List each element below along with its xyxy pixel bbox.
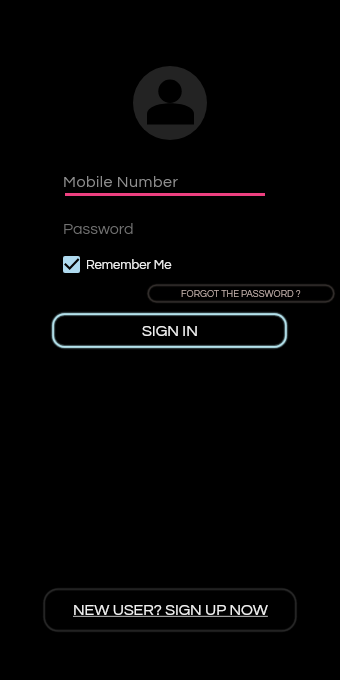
button[interactable]: NEW USER? SIGN UP NOW bbox=[43, 588, 297, 632]
staticText: FORGOT THE PASSWORD ? bbox=[181, 289, 301, 299]
button[interactable]: FORGOT THE PASSWORD ? bbox=[147, 284, 335, 303]
staticText: Mobile Number bbox=[63, 174, 179, 190]
staticText: Remember Me bbox=[86, 258, 172, 271]
other: Profile avatar bbox=[133, 66, 207, 140]
staticText: Password bbox=[63, 221, 134, 237]
staticText: NEW USER? SIGN UP NOW bbox=[73, 602, 268, 618]
button[interactable]: SIGN IN bbox=[51, 312, 288, 349]
staticText: SIGN IN bbox=[142, 323, 198, 339]
button[interactable]: Remember Me bbox=[63, 253, 172, 276]
